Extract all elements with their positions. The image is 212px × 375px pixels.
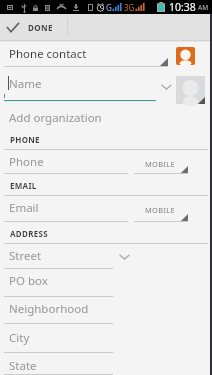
- staticText: Phone contact: [9, 46, 87, 62]
- button[interactable]: Phone: [0, 150, 212, 174]
- button[interactable]: DONE: [0, 14, 67, 40]
- staticText: Add organization: [9, 110, 102, 126]
- staticText: Name: [9, 76, 42, 92]
- button[interactable]: State: [0, 353, 212, 375]
- button[interactable]: City: [0, 324, 212, 353]
- button[interactable]: Phone contact: [0, 42, 212, 67]
- staticText: Street: [9, 248, 42, 264]
- staticText: PO box: [9, 273, 48, 289]
- staticText: G: [106, 2, 112, 13]
- button[interactable]: Neighborhood: [0, 297, 212, 324]
- staticText: 10:38: [169, 0, 196, 14]
- staticText: PHONE: [10, 134, 40, 145]
- staticText: EMAIL: [10, 180, 37, 191]
- staticText: Email: [9, 200, 39, 216]
- button[interactable]: Account type: [176, 47, 195, 65]
- button[interactable]: PO box: [0, 269, 212, 297]
- staticText: Neighborhood: [9, 301, 89, 317]
- button[interactable]: Add contact photo: [176, 76, 205, 104]
- staticText: ADDRESS: [10, 228, 48, 239]
- staticText: AM: [198, 3, 209, 12]
- button[interactable]: Street: [0, 244, 212, 269]
- staticText: MOBILE: [145, 205, 175, 215]
- staticText: 3G: [124, 2, 135, 13]
- staticText: MOBILE: [145, 159, 175, 169]
- staticText: Phone: [9, 154, 44, 170]
- staticText: State: [9, 358, 37, 374]
- button[interactable]: Add organization: [0, 102, 212, 129]
- staticText: City: [9, 330, 30, 346]
- button[interactable]: Email: [0, 196, 212, 222]
- staticText: DONE: [28, 22, 53, 33]
